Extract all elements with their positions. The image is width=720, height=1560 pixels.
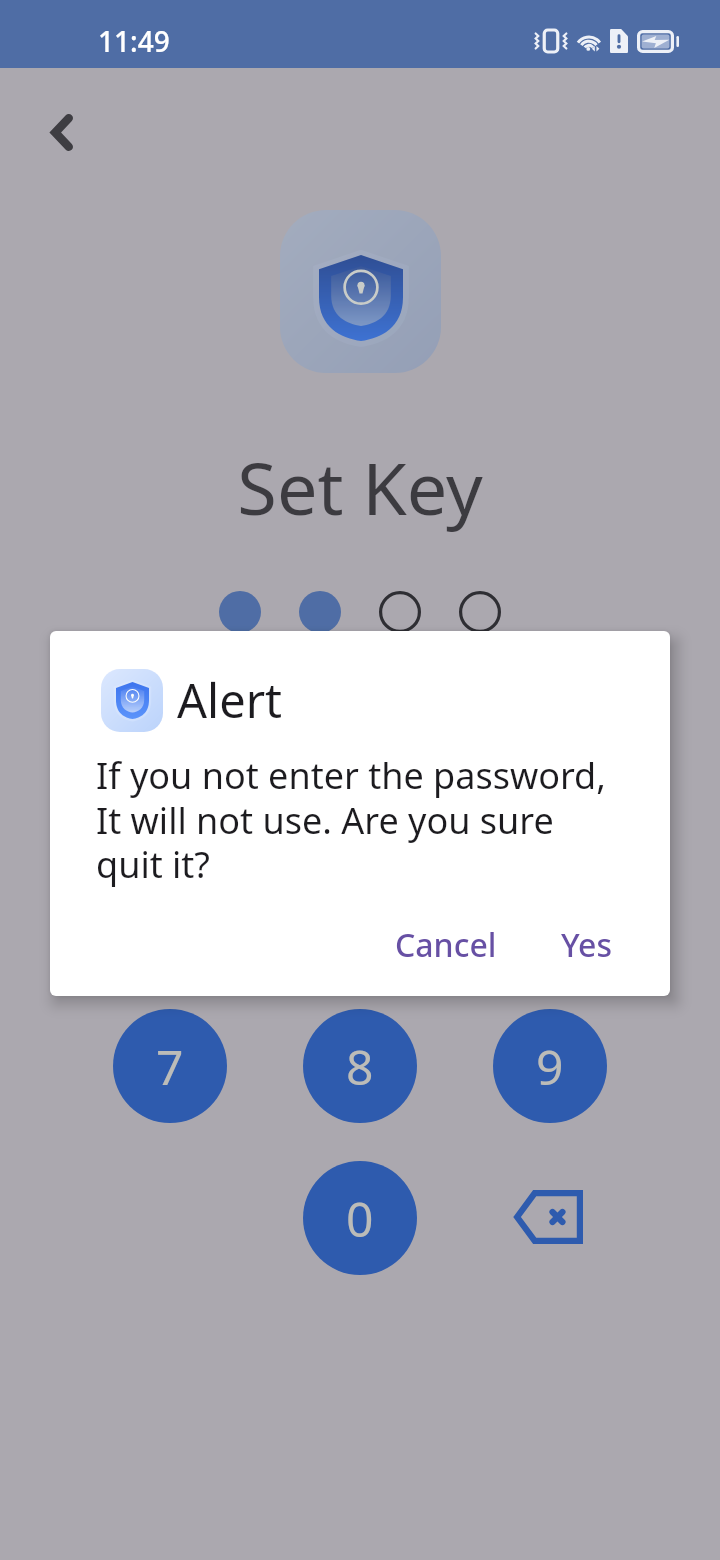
staticText: If you not enter the password, It will n… bbox=[96, 751, 614, 888]
staticText: 11:49 bbox=[98, 22, 170, 60]
staticText: 8 bbox=[346, 1034, 374, 1099]
staticText: Alert bbox=[177, 668, 283, 732]
button[interactable]: 8 bbox=[303, 1009, 417, 1123]
button[interactable]: 9 bbox=[493, 1009, 607, 1123]
staticText: Cancel bbox=[395, 923, 497, 967]
staticText: 7 bbox=[156, 1034, 184, 1099]
button[interactable]: Backspace bbox=[491, 1160, 605, 1274]
button[interactable]: 7 bbox=[113, 1009, 227, 1123]
button[interactable]: Back bbox=[28, 98, 96, 166]
staticText: Set Key bbox=[0, 438, 720, 536]
staticText: Yes bbox=[561, 923, 613, 967]
button[interactable]: Cancel bbox=[383, 913, 509, 977]
button[interactable]: 0 bbox=[303, 1161, 417, 1275]
button[interactable]: Yes bbox=[549, 913, 625, 977]
staticText: 0 bbox=[346, 1186, 374, 1251]
staticText: 9 bbox=[536, 1034, 564, 1099]
